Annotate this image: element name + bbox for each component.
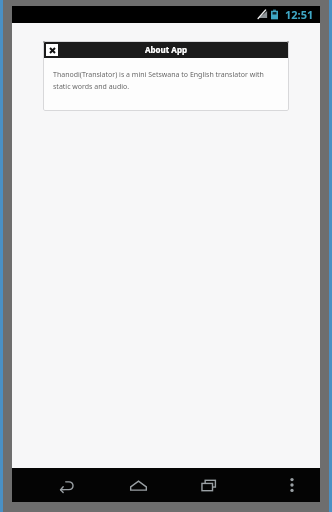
staticText: 12:51	[285, 7, 314, 22]
button[interactable]: Home	[116, 468, 160, 502]
button[interactable]: Back	[45, 468, 89, 502]
button[interactable]: More options	[277, 468, 307, 502]
staticText: Thanodi(Translator) is a mini Setswana t…	[53, 70, 279, 91]
staticText: About App	[145, 44, 187, 55]
button[interactable]: Recent apps	[187, 468, 231, 502]
button[interactable]: Close	[46, 44, 58, 56]
